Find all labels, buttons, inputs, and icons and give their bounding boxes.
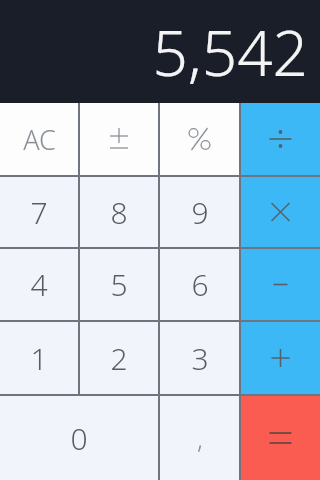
staticText: 2 bbox=[110, 338, 128, 379]
staticText: 3 bbox=[191, 338, 209, 379]
staticText: 8 bbox=[110, 192, 128, 233]
staticText: 4 bbox=[30, 264, 48, 305]
staticText: 0 bbox=[70, 418, 88, 459]
button[interactable]: 3 bbox=[160, 322, 239, 394]
button[interactable]: Percent bbox=[160, 103, 239, 175]
button[interactable]: Plus minus bbox=[80, 103, 158, 175]
staticText: 5 bbox=[110, 264, 128, 305]
button[interactable]: 8 bbox=[80, 177, 158, 247]
button[interactable]: 7 bbox=[0, 177, 78, 247]
staticText: 6 bbox=[191, 264, 209, 305]
button[interactable]: Divide bbox=[241, 103, 320, 175]
button[interactable]: 1 bbox=[0, 322, 78, 394]
staticText: 1 bbox=[30, 338, 48, 379]
button[interactable]: 2 bbox=[80, 322, 158, 394]
staticText: 7 bbox=[30, 192, 48, 233]
button[interactable]: 5 bbox=[80, 249, 158, 320]
button[interactable]: 0 bbox=[0, 396, 158, 480]
button[interactable]: , bbox=[160, 396, 239, 480]
button[interactable]: Plus bbox=[241, 322, 320, 394]
button[interactable]: 4 bbox=[0, 249, 78, 320]
button[interactable]: Minus bbox=[241, 249, 320, 320]
button[interactable]: 6 bbox=[160, 249, 239, 320]
staticText: AC bbox=[23, 121, 56, 158]
button[interactable]: AC bbox=[0, 103, 78, 175]
staticText: 5,542 bbox=[152, 10, 308, 94]
button[interactable]: Multiply bbox=[241, 177, 320, 247]
staticText: , bbox=[197, 421, 203, 456]
button[interactable]: Equals bbox=[241, 396, 320, 480]
staticText: 9 bbox=[191, 192, 209, 233]
button[interactable]: 9 bbox=[160, 177, 239, 247]
